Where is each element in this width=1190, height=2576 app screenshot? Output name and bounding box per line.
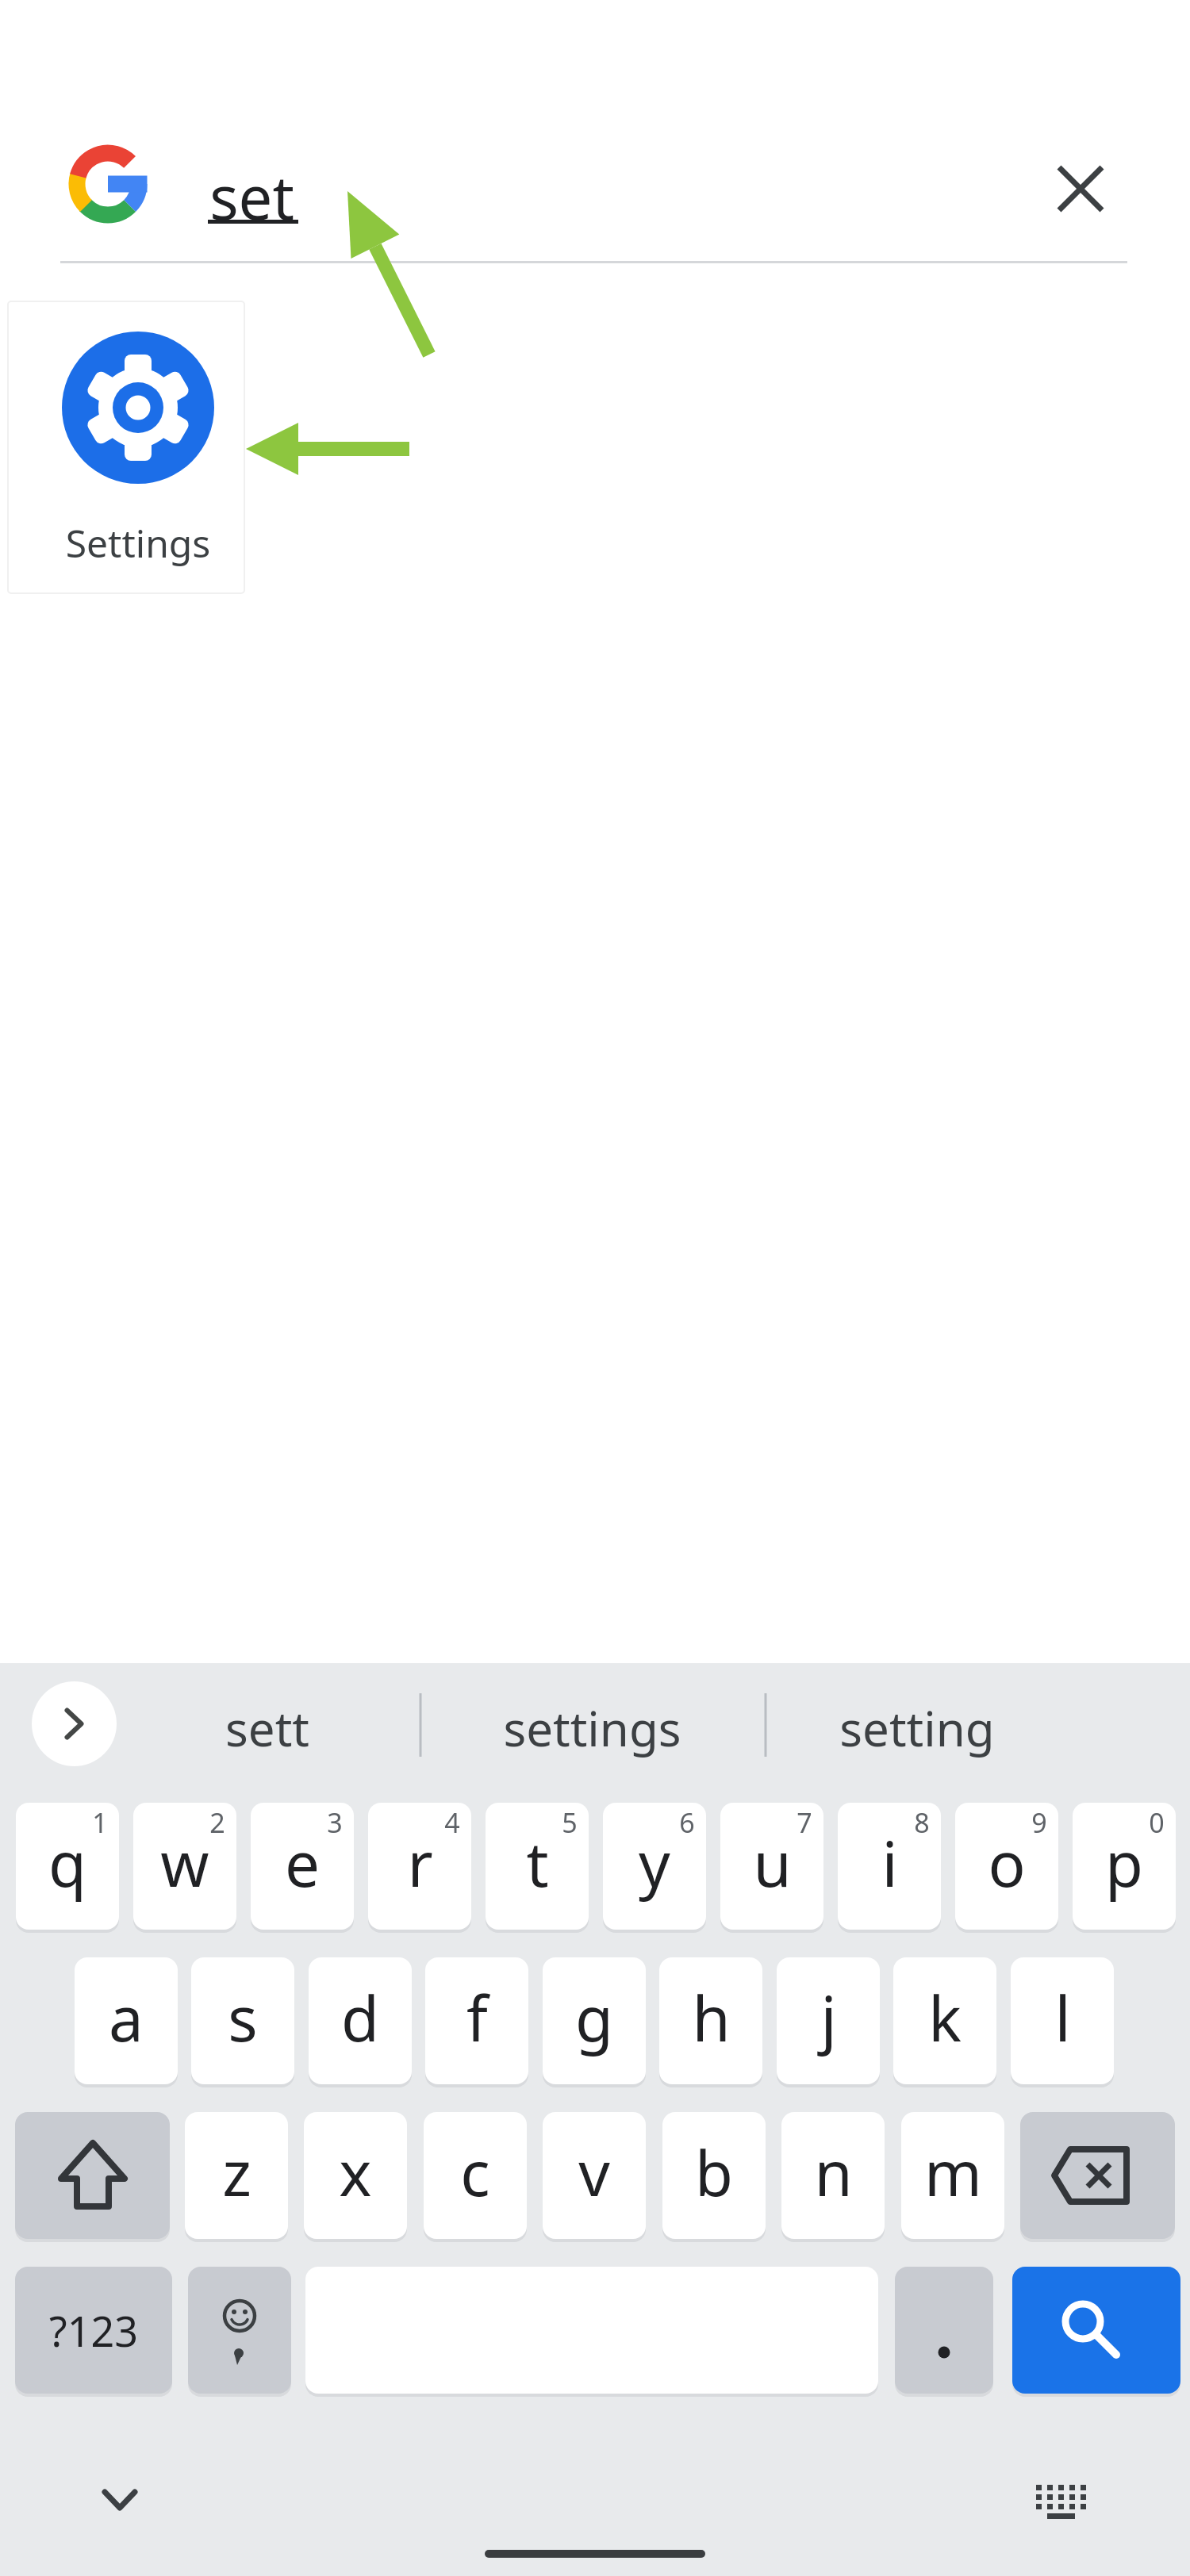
- button[interactable]: k: [893, 1957, 996, 2084]
- button[interactable]: e: [251, 1803, 354, 1930]
- staticText: r: [407, 1821, 433, 1905]
- button[interactable]: setting: [790, 1685, 1044, 1772]
- button[interactable]: [1027, 2467, 1099, 2538]
- button[interactable]: y: [603, 1803, 706, 1930]
- staticText: 5: [562, 1804, 578, 1841]
- staticText: m: [924, 2130, 982, 2214]
- button[interactable]: p: [1073, 1803, 1176, 1930]
- button[interactable]: u: [720, 1803, 823, 1930]
- button[interactable]: [32, 1681, 117, 1766]
- staticText: v: [578, 2130, 610, 2214]
- staticText: settings: [503, 1696, 681, 1761]
- staticText: w: [160, 1821, 209, 1905]
- staticText: x: [339, 2130, 372, 2214]
- staticText: n: [814, 2130, 853, 2214]
- staticText: ?123: [49, 2302, 138, 2359]
- button[interactable]: [1012, 2267, 1180, 2394]
- staticText: 3: [327, 1804, 343, 1841]
- staticText: p: [1105, 1821, 1143, 1905]
- button[interactable]: Settings: [8, 301, 244, 593]
- staticText: set: [209, 155, 294, 238]
- button[interactable]: o: [955, 1803, 1058, 1930]
- button[interactable]: w: [133, 1803, 236, 1930]
- button[interactable]: x: [304, 2112, 407, 2239]
- staticText: c: [460, 2130, 490, 2214]
- staticText: i: [881, 1821, 898, 1905]
- button[interactable]: [188, 2267, 291, 2394]
- button[interactable]: r: [368, 1803, 471, 1930]
- button[interactable]: [1047, 155, 1114, 222]
- staticText: 0: [1149, 1804, 1165, 1841]
- button[interactable]: m: [901, 2112, 1004, 2239]
- staticText: u: [753, 1821, 792, 1905]
- staticText: a: [109, 1976, 144, 2060]
- staticText: e: [285, 1821, 320, 1905]
- button[interactable]: g: [543, 1957, 646, 2084]
- staticText: t: [526, 1821, 549, 1905]
- button[interactable]: ?123: [15, 2267, 172, 2394]
- staticText: setting: [839, 1696, 995, 1761]
- staticText: 2: [209, 1804, 225, 1841]
- button[interactable]: [1020, 2112, 1175, 2239]
- button[interactable]: l: [1011, 1957, 1114, 2084]
- button[interactable]: s: [191, 1957, 294, 2084]
- button[interactable]: t: [486, 1803, 589, 1930]
- button[interactable]: b: [662, 2112, 766, 2239]
- staticText: q: [48, 1821, 86, 1905]
- staticText: k: [928, 1976, 962, 2060]
- staticText: l: [1054, 1976, 1071, 2060]
- staticText: z: [222, 2130, 251, 2214]
- button[interactable]: a: [75, 1957, 178, 2084]
- button[interactable]: i: [838, 1803, 941, 1930]
- staticText: 1: [92, 1804, 108, 1841]
- button[interactable]: [84, 2467, 155, 2538]
- button[interactable]: h: [659, 1957, 762, 2084]
- staticText: h: [692, 1976, 731, 2060]
- button[interactable]: sett: [140, 1685, 394, 1772]
- staticText: g: [575, 1976, 613, 2060]
- staticText: y: [639, 1821, 670, 1905]
- button[interactable]: settings: [465, 1685, 719, 1772]
- staticText: j: [820, 1976, 837, 2060]
- staticText: 9: [1031, 1804, 1047, 1841]
- button[interactable]: q: [16, 1803, 119, 1930]
- staticText: b: [695, 2130, 733, 2214]
- button[interactable]: [15, 2112, 170, 2239]
- staticText: 7: [797, 1804, 812, 1841]
- staticText: o: [988, 1821, 1026, 1905]
- button[interactable]: c: [424, 2112, 527, 2239]
- button[interactable]: f: [425, 1957, 528, 2084]
- staticText: d: [341, 1976, 379, 2060]
- staticText: s: [228, 1976, 258, 2060]
- button[interactable]: v: [543, 2112, 646, 2239]
- staticText: Settings: [63, 517, 213, 573]
- staticText: sett: [225, 1696, 309, 1761]
- button[interactable]: n: [781, 2112, 885, 2239]
- staticText: f: [466, 1976, 488, 2060]
- staticText: 4: [444, 1804, 460, 1841]
- button[interactable]: [895, 2267, 993, 2394]
- staticText: 6: [679, 1804, 695, 1841]
- button[interactable]: d: [309, 1957, 412, 2084]
- staticText: 8: [914, 1804, 930, 1841]
- button[interactable]: j: [777, 1957, 880, 2084]
- button[interactable]: z: [185, 2112, 288, 2239]
